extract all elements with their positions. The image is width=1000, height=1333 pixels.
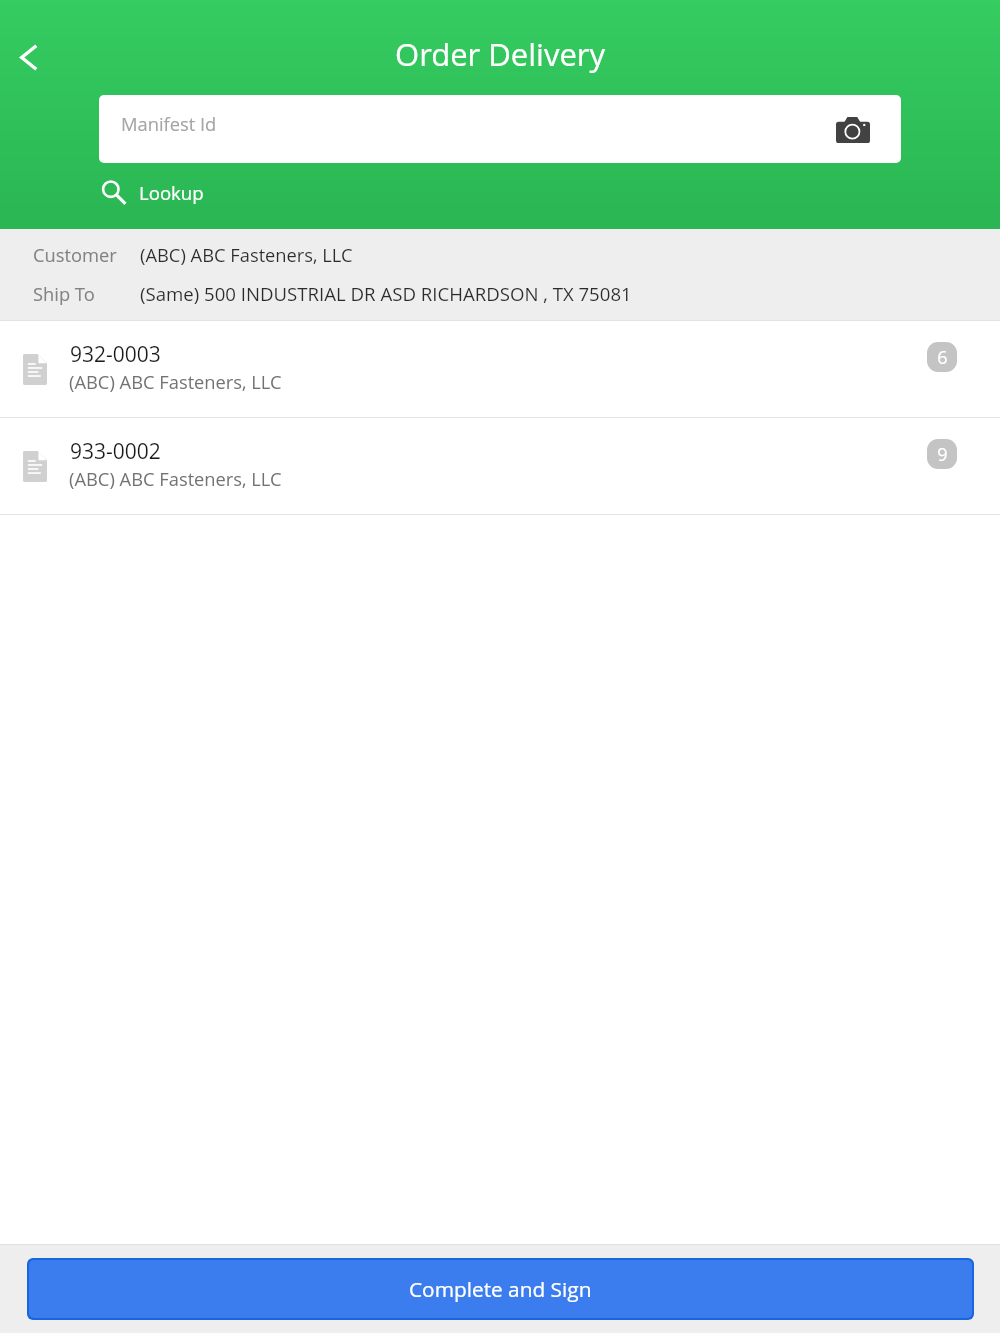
staticText: Manifest Id <box>121 111 217 136</box>
button[interactable]: Manifest Id <box>99 95 901 163</box>
staticText: (ABC) ABC Fasteners, LLC <box>140 242 353 267</box>
button[interactable]: 932-0003 <box>0 321 1000 417</box>
button[interactable]: Complete and Sign <box>29 1260 972 1318</box>
staticText: (Same) 500 INDUSTRIAL DR ASD RICHARDSON … <box>140 281 632 306</box>
staticText: (ABC) ABC Fasteners, LLC <box>69 466 282 491</box>
staticText: 6 <box>937 345 948 370</box>
staticText: 9 <box>937 442 948 467</box>
staticText: Complete and Sign <box>409 1275 592 1303</box>
button[interactable]: Back <box>0 28 58 86</box>
button[interactable]: Lookup <box>96 172 195 212</box>
staticText: (ABC) ABC Fasteners, LLC <box>69 369 282 394</box>
button[interactable]: 933-0002 <box>0 418 1000 514</box>
staticText: Customer <box>33 242 117 267</box>
staticText: Order Delivery <box>395 33 606 75</box>
staticText: Ship To <box>33 281 95 306</box>
staticText: 933-0002 <box>70 437 161 466</box>
staticText: 932-0003 <box>70 340 161 369</box>
button[interactable]: Scan with camera <box>822 101 884 158</box>
staticText: Lookup <box>139 180 204 205</box>
